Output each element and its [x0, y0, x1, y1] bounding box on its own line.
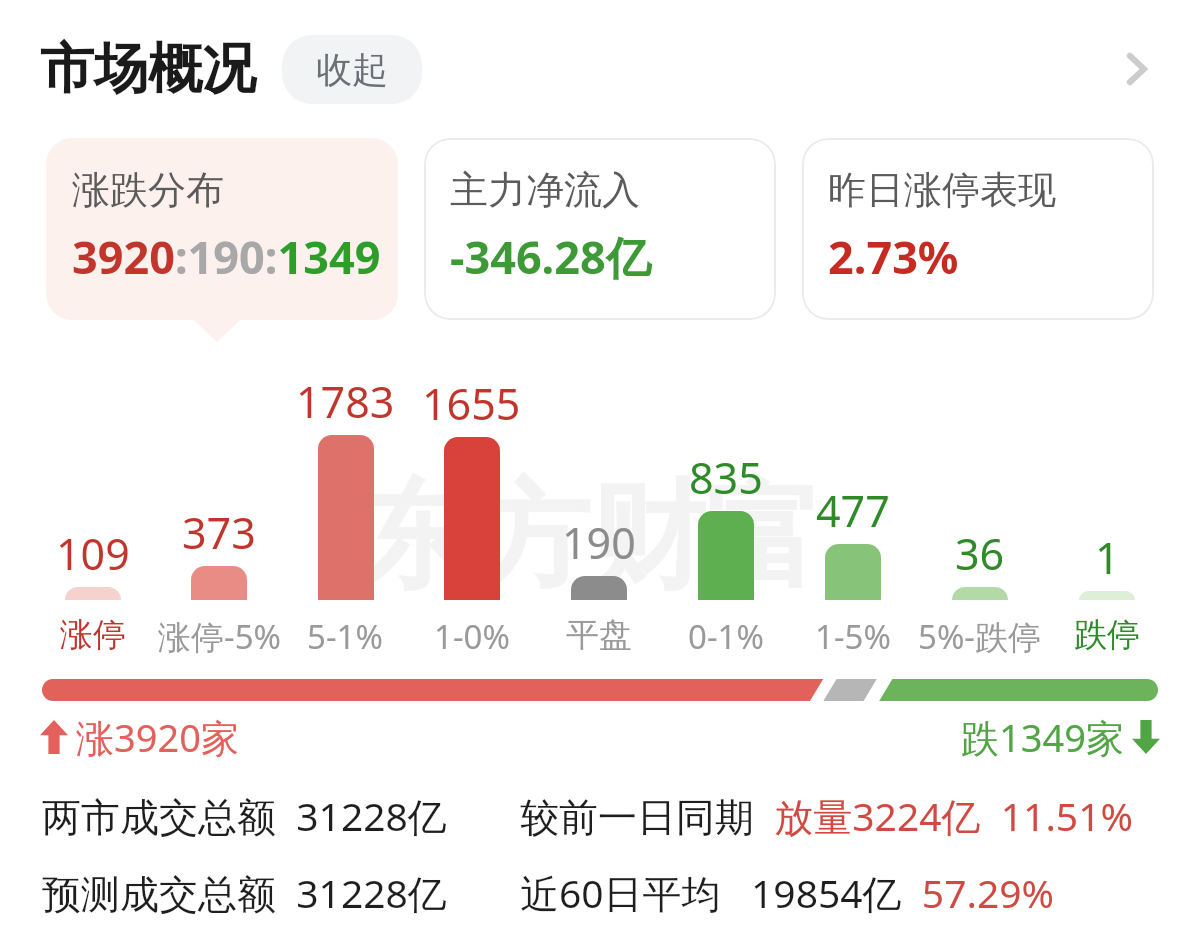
- staticText: 东方财富: [358, 464, 822, 610]
- staticText: 昨日涨停表现: [828, 166, 1056, 214]
- staticText: 0-1%: [688, 614, 764, 659]
- staticText: 36: [955, 524, 1005, 583]
- staticText: 835: [689, 448, 763, 507]
- staticText: 3920:190:1349: [72, 226, 381, 287]
- staticText: 近60日平均 19854亿 57.29%: [520, 866, 1054, 919]
- staticText: 较前一日同期 放量3224亿 11.51%: [520, 789, 1133, 842]
- staticText: 5-1%: [307, 614, 383, 659]
- staticText: 两市成交总额 31228亿: [42, 789, 447, 842]
- staticText: 5%-跌停: [918, 614, 1041, 659]
- button[interactable]: 查看更多: [1106, 39, 1166, 99]
- staticText: 涨停-5%: [158, 614, 281, 659]
- staticText: 涨3920家: [76, 711, 239, 763]
- staticText: 109: [56, 524, 130, 583]
- staticText: 1655: [422, 374, 521, 433]
- staticText: 市场概况: [40, 35, 256, 103]
- staticText: 1-5%: [815, 614, 891, 659]
- button[interactable]: 涨跌分布: [46, 138, 398, 320]
- staticText: 涨停: [60, 614, 126, 656]
- staticText: -346.28亿: [450, 226, 651, 287]
- staticText: 跌1349家: [961, 711, 1124, 763]
- staticText: 477: [816, 481, 890, 540]
- staticText: 收起: [316, 47, 388, 92]
- staticText: 主力净流入: [450, 166, 640, 214]
- button[interactable]: 昨日涨停表现: [802, 138, 1154, 320]
- staticText: 373: [182, 503, 256, 562]
- staticText: 2.73%: [828, 226, 959, 287]
- staticText: 1783: [296, 372, 395, 431]
- staticText: 预测成交总额 31228亿: [42, 866, 447, 919]
- staticText: 平盘: [566, 614, 632, 656]
- button[interactable]: 主力净流入: [424, 138, 776, 320]
- staticText: 1-0%: [434, 614, 510, 659]
- staticText: 涨跌分布: [72, 166, 224, 214]
- staticText: 跌停: [1074, 614, 1140, 656]
- staticText: 1: [1095, 528, 1120, 587]
- button[interactable]: 收起: [282, 35, 422, 104]
- staticText: 190: [562, 513, 636, 572]
